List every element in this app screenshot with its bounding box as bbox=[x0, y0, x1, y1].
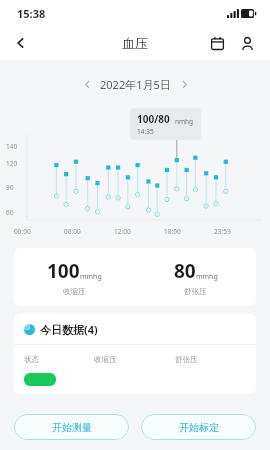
staticText: 90 bbox=[6, 183, 14, 192]
staticText: 舒张压 bbox=[175, 355, 198, 364]
staticText: 120 bbox=[6, 159, 18, 168]
staticText: 12:00 bbox=[114, 227, 131, 236]
staticText: 06:00 bbox=[64, 227, 81, 236]
button[interactable]: 开始标定 bbox=[141, 414, 256, 440]
staticText: 15:38 bbox=[17, 6, 46, 21]
staticText: 血压 bbox=[122, 35, 148, 51]
staticText: 100 bbox=[47, 258, 80, 284]
staticText: nmhg bbox=[175, 117, 194, 126]
button[interactable]: Calendar bbox=[204, 30, 230, 56]
staticText: 舒张压 bbox=[184, 287, 207, 296]
staticText: 收缩压 bbox=[63, 287, 86, 296]
staticText: mmhg bbox=[196, 272, 218, 282]
staticText: 状态 bbox=[24, 355, 39, 364]
staticText: 收缩压 bbox=[94, 355, 117, 364]
staticText: 开始标定 bbox=[179, 421, 219, 434]
button[interactable]: Next day bbox=[175, 75, 193, 93]
staticText: 18:00 bbox=[164, 227, 181, 236]
staticText: 80 bbox=[174, 258, 196, 284]
staticText: 2022年1月5日 bbox=[100, 77, 171, 92]
button[interactable]: Previous day bbox=[78, 75, 96, 93]
staticText: 23:59 bbox=[214, 227, 231, 236]
button[interactable]: 开始测量 bbox=[14, 414, 129, 440]
staticText: 100/80 bbox=[137, 112, 170, 126]
staticText: 开始测量 bbox=[52, 421, 92, 434]
button[interactable]: Profile bbox=[234, 30, 260, 56]
staticText: mmhg bbox=[80, 272, 102, 282]
staticText: 60 bbox=[6, 208, 14, 217]
staticText: 今日数据(4) bbox=[40, 322, 98, 337]
button[interactable]: Back bbox=[6, 28, 36, 58]
staticText: 140 bbox=[6, 142, 18, 151]
staticText: 14:35 bbox=[137, 127, 154, 136]
staticText: 00:00 bbox=[14, 227, 31, 236]
